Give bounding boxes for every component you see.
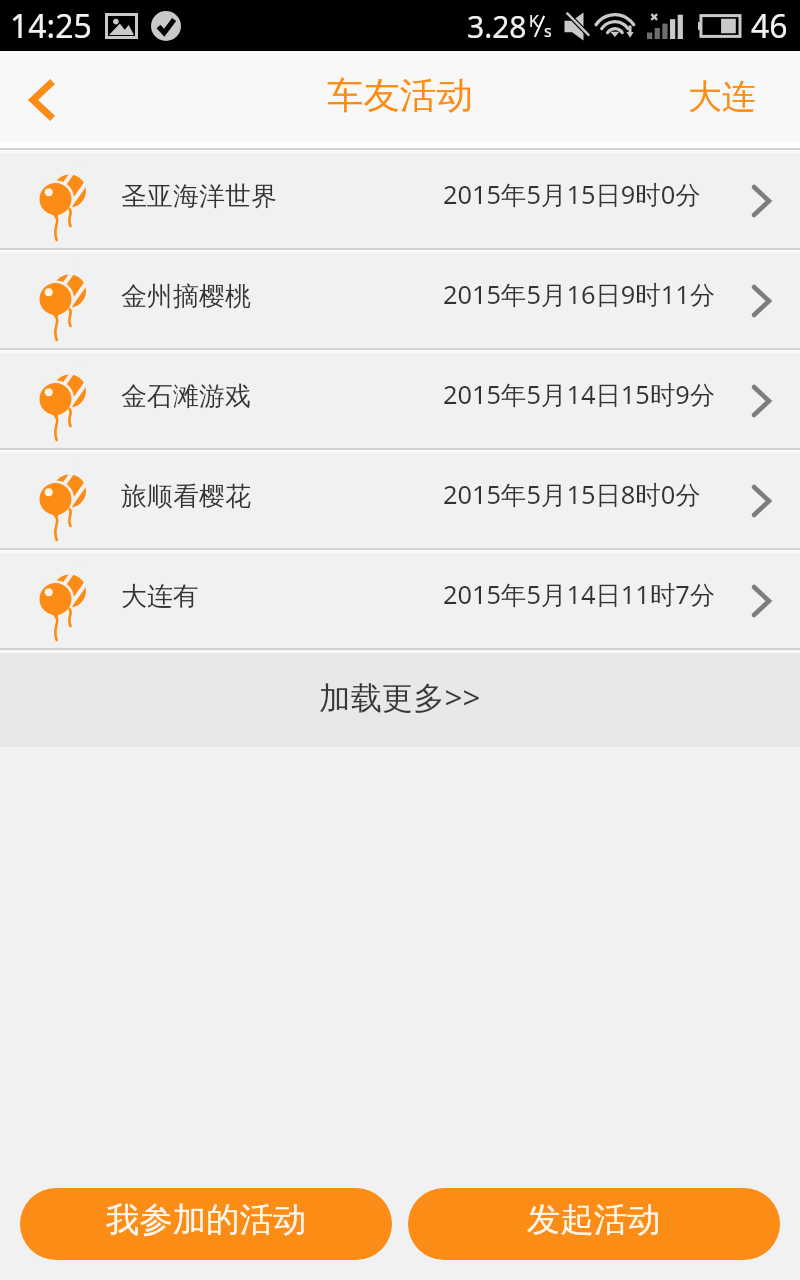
button[interactable]: 大连 xyxy=(664,51,800,148)
staticText: 金州摘樱桃 xyxy=(121,280,443,313)
button[interactable]: 旅顺看樱花 xyxy=(0,453,800,548)
staticText: 车友活动 xyxy=(327,73,473,119)
staticText: 大连有 xyxy=(121,580,443,613)
staticText: 旅顺看樱花 xyxy=(121,480,443,513)
staticText: 3.28 xyxy=(467,6,527,47)
staticText: 46 xyxy=(751,4,788,48)
staticText: 圣亚海洋世界 xyxy=(121,180,443,213)
staticText: 2015年5月14日15时9分 xyxy=(443,377,716,412)
button[interactable]: 加载更多>> xyxy=(0,653,800,747)
staticText: s xyxy=(544,20,552,42)
staticText: 14:25 xyxy=(10,4,92,48)
button[interactable]: 发起活动 xyxy=(408,1188,780,1260)
staticText: 大连 xyxy=(688,75,756,118)
staticText: 发起活动 xyxy=(527,1199,661,1241)
staticText: 2015年5月16日9时11分 xyxy=(443,277,716,312)
button[interactable]: 圣亚海洋世界 xyxy=(0,153,800,248)
staticText: 我参加的活动 xyxy=(106,1199,307,1241)
staticText: 2015年5月15日9时0分 xyxy=(443,177,701,212)
staticText: K xyxy=(529,10,539,32)
button[interactable]: 大连有 xyxy=(0,553,800,648)
staticText: 2015年5月15日8时0分 xyxy=(443,477,701,512)
button[interactable]: 我参加的活动 xyxy=(20,1188,392,1260)
button[interactable]: 金州摘樱桃 xyxy=(0,253,800,348)
staticText: 加载更多>> xyxy=(319,675,481,718)
button[interactable]: Back xyxy=(0,51,82,148)
staticText: 2015年5月14日11时7分 xyxy=(443,577,716,612)
staticText: 金石滩游戏 xyxy=(121,380,443,413)
button[interactable]: 金石滩游戏 xyxy=(0,353,800,448)
